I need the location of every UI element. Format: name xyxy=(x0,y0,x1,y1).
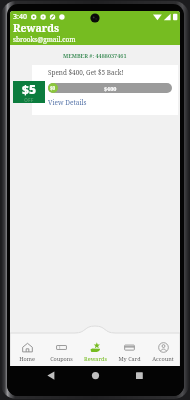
button[interactable]: View Details xyxy=(48,98,87,107)
button[interactable]: My Card xyxy=(112,326,146,367)
staticText: sbrooks@gmail.com xyxy=(13,35,76,44)
staticText: Account xyxy=(152,355,174,362)
staticText: Coupons xyxy=(50,355,73,362)
staticText: $5 xyxy=(22,81,36,97)
staticText: Rewards xyxy=(84,355,107,362)
staticText: Rewards xyxy=(13,21,60,35)
button[interactable]: Account xyxy=(146,326,180,367)
staticText: MEMBER #: 4488037461 xyxy=(63,52,127,59)
staticText: OFF xyxy=(24,97,34,103)
button[interactable]: Coupons xyxy=(44,326,78,367)
staticText: Home xyxy=(19,355,35,362)
staticText: $400 xyxy=(104,85,117,92)
staticText: My Card xyxy=(118,355,141,362)
button[interactable]: Rewards xyxy=(78,326,112,367)
staticText: Spend $400, Get $5 Back! xyxy=(48,68,124,77)
staticText: $0 xyxy=(50,85,56,91)
staticText: 3:40 xyxy=(13,12,27,22)
button[interactable]: Home xyxy=(10,326,44,367)
